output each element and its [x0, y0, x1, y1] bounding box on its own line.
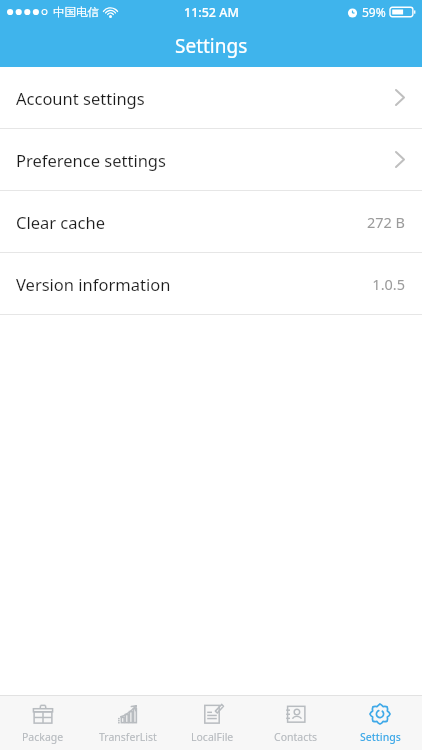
staticText: Preference settings	[16, 149, 166, 171]
staticText: Settings	[360, 730, 401, 744]
staticText: 1.0.5	[372, 274, 405, 294]
button[interactable]: TransferList	[85, 696, 170, 750]
staticText: Contacts	[274, 730, 318, 744]
button[interactable]: Contacts	[254, 696, 338, 750]
button[interactable]: Package	[0, 696, 85, 750]
staticText: Version information	[16, 273, 171, 295]
staticText: LocalFile	[191, 730, 234, 744]
staticText: Settings	[175, 33, 248, 59]
staticText: 59%	[362, 4, 386, 20]
button[interactable]: LocalFile	[170, 696, 254, 750]
staticText: TransferList	[99, 730, 157, 744]
staticText: Clear cache	[16, 211, 105, 233]
button[interactable]: Clear cache	[0, 191, 422, 252]
staticText: Account settings	[16, 87, 145, 109]
button[interactable]: Settings	[338, 696, 422, 750]
button[interactable]: Preference settings	[0, 129, 422, 190]
staticText: 11:52 AM	[184, 4, 239, 21]
staticText: 中国电信	[53, 5, 99, 19]
staticText: Package	[22, 730, 64, 744]
button[interactable]: Version information	[0, 253, 422, 314]
staticText: 272 B	[366, 212, 405, 232]
button[interactable]: Account settings	[0, 67, 422, 128]
